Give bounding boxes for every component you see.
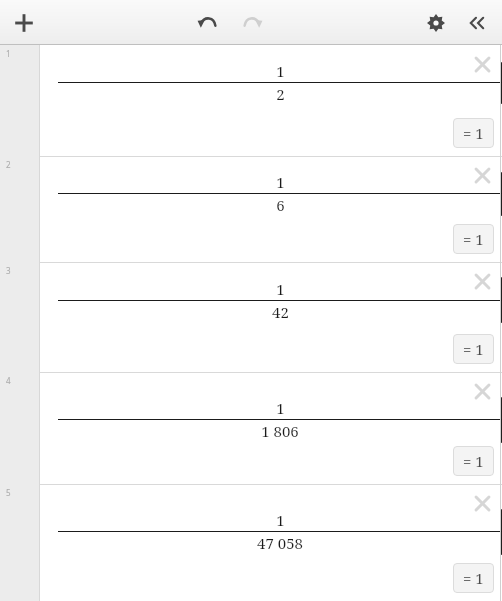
button[interactable]: New expression [4, 3, 44, 43]
staticText: 3 [6, 265, 11, 276]
button[interactable]: Delete expression [465, 47, 499, 81]
button[interactable]: 3 [0, 262, 502, 372]
staticText: = 1 [463, 451, 484, 471]
button[interactable]: 1 [0, 45, 502, 156]
staticText: 1 [276, 279, 285, 299]
button[interactable]: Delete expression [465, 486, 499, 520]
staticText: 1 [6, 48, 11, 59]
button[interactable]: Settings [416, 3, 456, 43]
button[interactable]: = 1 [453, 563, 494, 593]
staticText: 2 [6, 159, 11, 170]
staticText: 47 058 [257, 533, 303, 553]
button[interactable]: = 1 [453, 224, 494, 254]
button[interactable]: = 1 [453, 446, 494, 476]
staticText: 42 [272, 302, 289, 322]
button[interactable]: Delete expression [465, 158, 499, 192]
staticText: 1 [276, 172, 285, 192]
button[interactable]: Delete expression [465, 264, 499, 298]
staticText: 1 [276, 510, 285, 530]
button[interactable]: 5 [0, 484, 502, 601]
button[interactable]: = 1 [453, 118, 494, 148]
button[interactable]: Undo [187, 3, 227, 43]
staticText: 2 [276, 84, 285, 104]
button[interactable]: Collapse panel [458, 3, 498, 43]
staticText: 5 [6, 487, 11, 498]
staticText: = 1 [463, 339, 484, 359]
staticText: = 1 [463, 123, 484, 143]
button[interactable]: 2 [0, 156, 502, 262]
staticText: = 1 [463, 568, 484, 588]
staticText: 4 [6, 375, 11, 386]
button[interactable]: Redo [233, 3, 273, 43]
staticText: 1 [276, 398, 285, 418]
button[interactable]: Delete expression [465, 374, 499, 408]
staticText: 6 [276, 195, 285, 215]
button[interactable]: = 1 [453, 334, 494, 364]
staticText: 1 806 [261, 421, 299, 441]
button[interactable]: 4 [0, 372, 502, 484]
staticText: 1 [276, 61, 285, 81]
staticText: = 1 [463, 229, 484, 249]
